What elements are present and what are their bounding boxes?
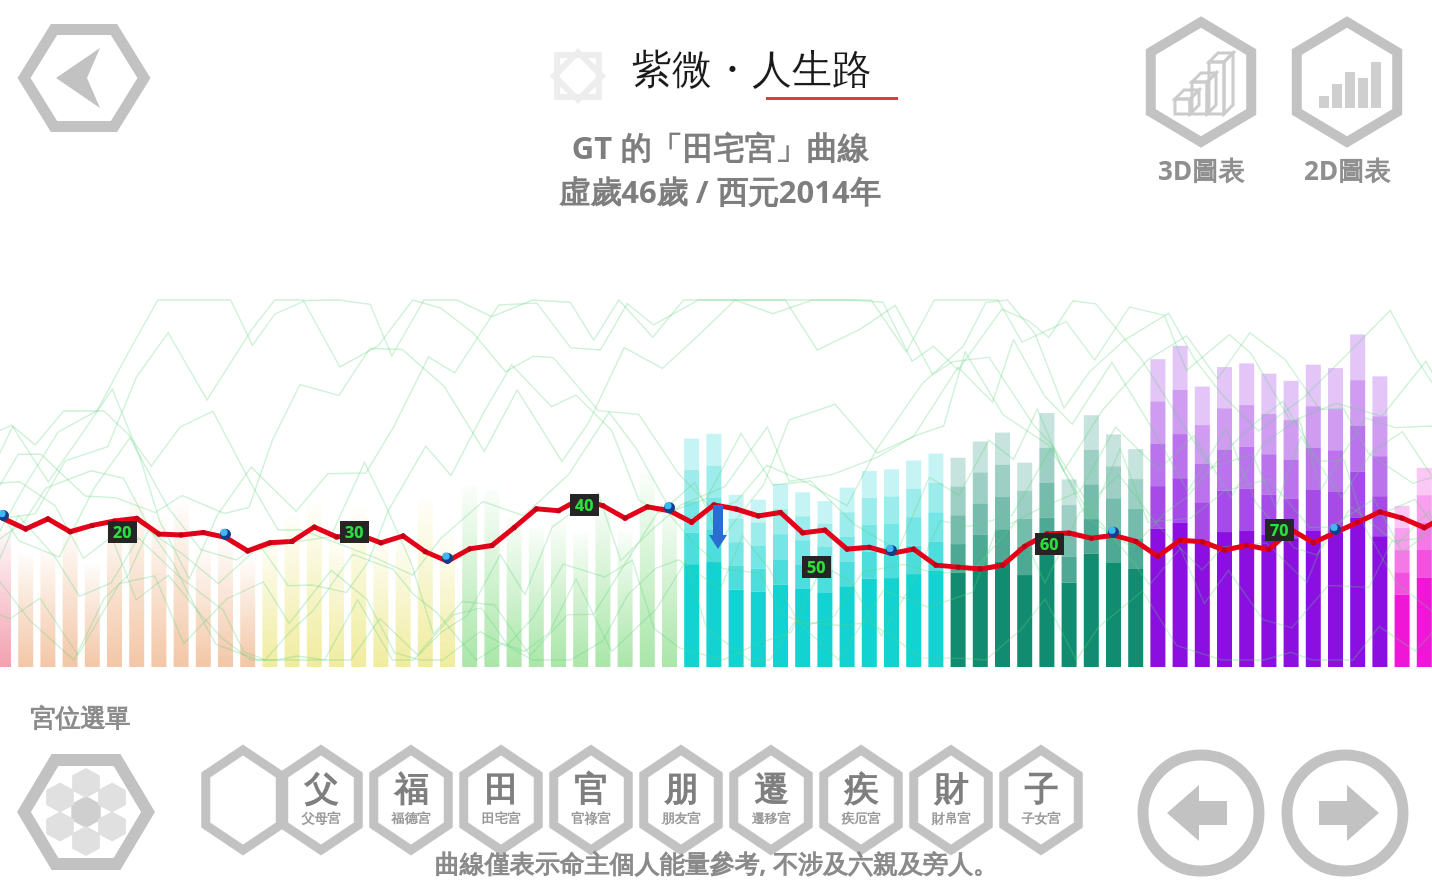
staticText: 60 [1040, 533, 1059, 555]
button[interactable]: 福 [366, 748, 456, 852]
staticText: 虛歲46歲 / 西元2014年 [500, 170, 940, 212]
button[interactable]: 朋 [636, 748, 726, 852]
staticText: 財 [906, 768, 996, 812]
staticText: 曲線僅表示命主個人能量參考, 不涉及六親及旁人。 [316, 846, 1116, 886]
button[interactable]: 宮位選單 [20, 748, 152, 876]
staticText: 遷 [726, 768, 816, 812]
button[interactable]: 遷 [726, 748, 816, 852]
staticText: 遷移宮 [726, 810, 816, 832]
staticText: 子 [996, 768, 1086, 812]
staticText: 30 [345, 521, 364, 543]
button[interactable]: 返回 [18, 22, 150, 134]
staticText: 3D圖表 [1142, 152, 1260, 188]
staticText: 朋 [636, 768, 726, 812]
button[interactable]: 2D圖表 [1288, 22, 1406, 192]
staticText: 福德宮 [366, 810, 456, 832]
staticText: 2D圖表 [1288, 152, 1406, 188]
staticText: 朋友宮 [636, 810, 726, 832]
staticText: 40 [575, 494, 594, 516]
staticText: 70 [1270, 519, 1289, 541]
staticText: 官 [546, 768, 636, 812]
staticText: 官祿宮 [546, 810, 636, 832]
staticText: 宮位選單 [30, 703, 130, 734]
staticText: 50 [807, 556, 826, 578]
button[interactable]: 田 [456, 748, 546, 852]
staticText: GT 的「田宅宮」曲線 [500, 126, 940, 168]
button[interactable]: 疾 [816, 748, 906, 852]
staticText: 父母宮 [276, 810, 366, 832]
button[interactable]: 財 [906, 748, 996, 852]
button[interactable]: 下一個 [1280, 748, 1410, 878]
button[interactable]: 3D圖表 [1142, 22, 1260, 192]
staticText: 財帛宮 [906, 810, 996, 832]
staticText: 20 [113, 521, 132, 543]
staticText: 田 [456, 768, 546, 812]
staticText: 疾厄宮 [816, 810, 906, 832]
button[interactable]: 上一個 [1136, 748, 1266, 878]
staticText: 紫微・人生路 [632, 44, 872, 94]
staticText: 田宅宮 [456, 810, 546, 832]
staticText: 子女宮 [996, 810, 1086, 832]
button[interactable]: 官 [546, 748, 636, 852]
button[interactable]: 父 [276, 748, 366, 852]
button[interactable]: 子 [996, 748, 1086, 852]
staticText: 疾 [816, 768, 906, 812]
staticText: 福 [366, 768, 456, 812]
staticText: 父 [276, 768, 366, 812]
